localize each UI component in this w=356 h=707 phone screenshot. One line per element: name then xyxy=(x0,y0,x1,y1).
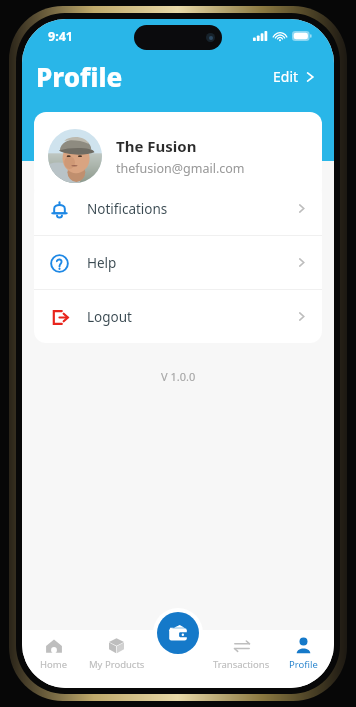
staticText: Notifications xyxy=(87,200,168,218)
staticText: 9:41 xyxy=(48,28,73,45)
staticText: Profile xyxy=(289,658,318,671)
staticText: Edit xyxy=(273,67,299,86)
staticText: My Products xyxy=(89,658,145,671)
button[interactable]: Wallet xyxy=(157,612,199,654)
staticText: Home xyxy=(40,658,68,671)
button[interactable]: The Fusion xyxy=(34,112,322,200)
button[interactable]: Logout xyxy=(34,290,322,343)
button[interactable]: Transactions xyxy=(210,636,272,688)
staticText: V 1.0.0 xyxy=(161,369,196,384)
staticText: Help xyxy=(87,254,117,272)
staticText: The Fusion xyxy=(116,136,197,156)
staticText: Logout xyxy=(87,308,132,326)
staticText: thefusion@gmail.com xyxy=(116,160,245,177)
button[interactable]: My Products xyxy=(85,636,148,688)
staticText: Transactions xyxy=(213,658,270,671)
button[interactable]: Notifications xyxy=(34,182,322,235)
button[interactable]: Edit xyxy=(269,63,320,90)
staticText: Profile xyxy=(36,59,123,94)
button[interactable]: Home xyxy=(22,636,85,688)
button[interactable]: Help xyxy=(34,236,322,289)
button[interactable]: Profile xyxy=(272,636,334,688)
